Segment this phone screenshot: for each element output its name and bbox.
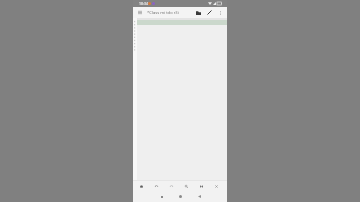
button[interactable]: Menu bbox=[133, 7, 147, 18]
button[interactable]: Home bbox=[171, 191, 190, 202]
button[interactable]: Back bbox=[190, 191, 209, 202]
button[interactable]: Recents bbox=[152, 191, 171, 202]
button[interactable]: Close bbox=[209, 181, 223, 191]
staticText: *Class mi tdo r3i bbox=[147, 10, 179, 16]
button[interactable]: Open folder bbox=[193, 7, 204, 18]
staticText: 18:34 bbox=[139, 1, 148, 6]
button[interactable]: Redo bbox=[164, 181, 178, 191]
button[interactable]: Edit bbox=[204, 7, 215, 18]
button[interactable]: Search bbox=[179, 181, 193, 191]
button[interactable]: More options bbox=[215, 7, 225, 18]
button[interactable]: Jump to line bbox=[194, 181, 208, 191]
button[interactable]: Undo bbox=[149, 181, 163, 191]
button[interactable]: Save bbox=[134, 181, 148, 191]
